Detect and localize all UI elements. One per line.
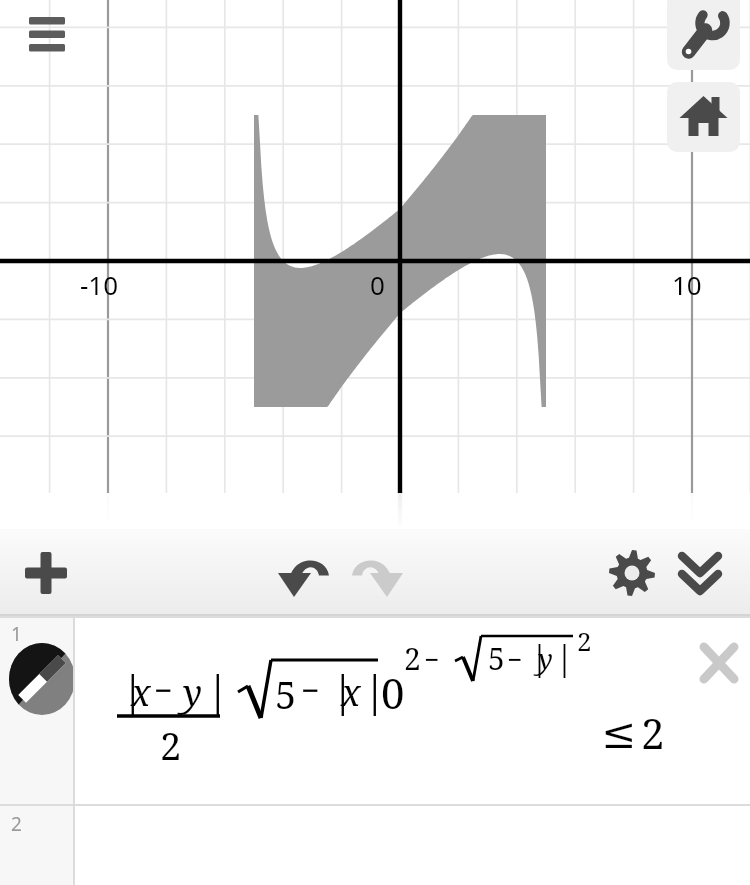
staticText: 0	[381, 664, 405, 721]
staticText: 0	[370, 267, 385, 302]
staticText: y	[183, 668, 203, 717]
button[interactable]: Collapse keypad	[671, 543, 729, 603]
staticText: −	[301, 668, 320, 712]
staticText: 2	[577, 623, 592, 658]
staticText: 2	[641, 704, 665, 761]
staticText: ≤	[601, 709, 637, 758]
staticText: 2	[160, 719, 182, 771]
staticText: |	[206, 661, 230, 718]
button[interactable]: Tools	[667, 0, 740, 70]
staticText: 1	[11, 621, 22, 647]
button[interactable]: Undo	[272, 543, 338, 603]
button[interactable]: Redo	[343, 543, 409, 603]
staticText: |	[331, 661, 355, 718]
staticText: 5	[275, 668, 297, 720]
staticText: 2	[404, 638, 421, 679]
staticText: y	[538, 639, 553, 677]
button[interactable]: Delete expression	[693, 636, 745, 690]
staticText: |	[530, 634, 550, 680]
staticText: −	[424, 641, 440, 676]
staticText: |	[555, 634, 575, 680]
staticText: −	[507, 641, 523, 676]
staticText: 5	[488, 638, 505, 679]
button[interactable]: 2	[0, 806, 750, 885]
staticText: 10	[672, 267, 702, 302]
staticText: x	[131, 668, 151, 717]
button[interactable]: Home	[667, 82, 740, 152]
button[interactable]: Toggle plot visibility	[9, 643, 75, 715]
staticText: x	[341, 668, 361, 717]
button[interactable]: Menu	[18, 4, 76, 60]
staticText: -10	[80, 267, 119, 302]
staticText: |	[121, 661, 145, 718]
button[interactable]: Add expression	[10, 543, 82, 603]
staticText: 2	[11, 811, 22, 837]
staticText: |	[363, 661, 387, 718]
staticText: −	[154, 668, 173, 712]
button[interactable]: Settings	[602, 543, 662, 603]
button[interactable]: 1	[0, 616, 750, 806]
